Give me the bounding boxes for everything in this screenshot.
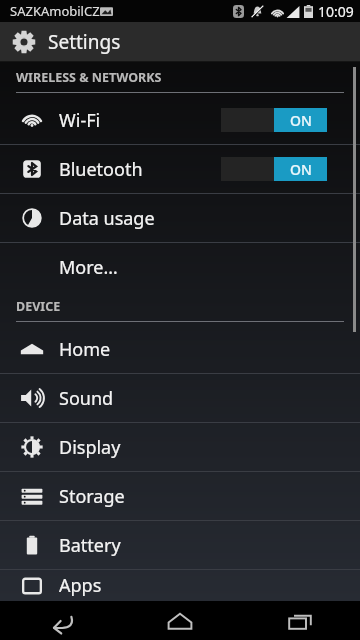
- button[interactable]: Apps: [0, 570, 360, 601]
- button[interactable]: More…: [0, 243, 360, 291]
- button[interactable]: ON: [221, 108, 327, 132]
- staticText: Home: [59, 337, 111, 362]
- staticText: Apps: [59, 573, 102, 598]
- staticText: Wi-Fi: [59, 108, 101, 133]
- button[interactable]: Back: [0, 601, 120, 640]
- button[interactable]: ON: [221, 157, 327, 181]
- button[interactable]: Storage: [0, 472, 360, 520]
- button[interactable]: Recent apps: [240, 601, 360, 640]
- staticText: Data usage: [59, 206, 155, 231]
- staticText: Battery: [59, 533, 121, 558]
- staticText: ON: [290, 111, 312, 130]
- staticText: Settings: [48, 29, 121, 55]
- button[interactable]: Display: [0, 423, 360, 471]
- button[interactable]: Home: [0, 325, 360, 373]
- staticText: SAZKAmobilCZ: [10, 2, 100, 20]
- button[interactable]: Sound: [0, 374, 360, 422]
- staticText: Display: [59, 435, 121, 460]
- button[interactable]: Battery: [0, 521, 360, 569]
- staticText: WIRELESS & NETWORKS: [16, 69, 162, 86]
- staticText: More…: [59, 255, 118, 280]
- button[interactable]: Home: [120, 601, 240, 640]
- button[interactable]: Bluetooth: [0, 145, 360, 193]
- button[interactable]: Wi-Fi: [0, 96, 360, 144]
- button[interactable]: Data usage: [0, 194, 360, 242]
- staticText: Sound: [59, 386, 114, 411]
- staticText: Storage: [59, 484, 125, 509]
- staticText: 10:09: [318, 2, 354, 21]
- staticText: DEVICE: [16, 298, 61, 315]
- staticText: Bluetooth: [59, 157, 143, 182]
- staticText: ON: [290, 160, 312, 179]
